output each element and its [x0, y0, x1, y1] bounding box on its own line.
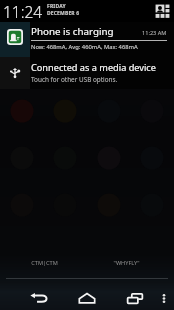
button[interactable]: Quick settings	[155, 4, 170, 19]
staticText: Touch for other USB options.	[31, 75, 118, 84]
staticText: DECEMBER 6	[47, 10, 80, 17]
button[interactable]: Connected as a media device	[0, 57, 174, 89]
button[interactable]: More options	[154, 284, 174, 310]
button[interactable]: Home	[63, 284, 111, 310]
staticText: 11:24	[3, 1, 43, 22]
button[interactable]: Phone is charging	[0, 22, 174, 57]
staticText: "WHYFLY"	[113, 259, 140, 267]
staticText: Now: 468mA, Avg: 460mA, Max: 468mA	[31, 43, 138, 51]
staticText: Connected as a media device	[31, 61, 156, 74]
staticText: 11:23 AM	[142, 29, 167, 37]
staticText: FRIDAY	[47, 3, 66, 10]
button[interactable]: Recent apps	[111, 284, 159, 310]
staticText: СТМ|СТМ	[31, 259, 58, 267]
button[interactable]: Back	[15, 284, 63, 310]
staticText: Phone is charging	[31, 25, 114, 38]
